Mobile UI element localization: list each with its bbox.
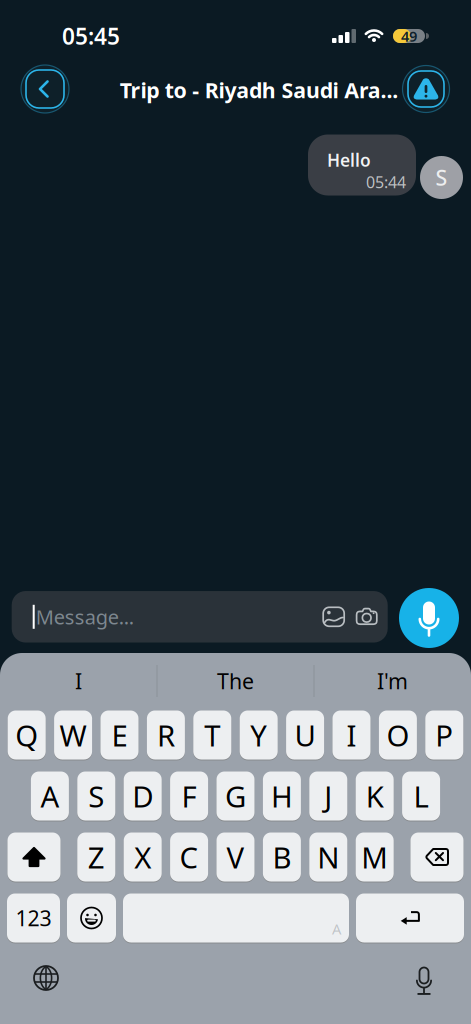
button[interactable]: H: [263, 771, 301, 821]
button[interactable]: O: [379, 710, 417, 760]
button[interactable]: C: [170, 832, 208, 882]
button[interactable]: X: [124, 832, 162, 882]
staticText: Y: [250, 715, 267, 754]
button[interactable]: S: [77, 771, 115, 821]
button[interactable]: Report: [401, 64, 450, 113]
staticText: D: [132, 776, 153, 815]
button[interactable]: Return: [356, 893, 464, 943]
button[interactable]: M: [356, 832, 394, 882]
button[interactable]: Next keyboard: [0, 965, 59, 991]
button[interactable]: Back: [20, 64, 70, 114]
staticText: The: [217, 667, 254, 695]
button[interactable]: Delete: [410, 832, 463, 882]
staticText: H: [271, 776, 293, 815]
staticText: M: [361, 837, 388, 876]
staticText: 49: [401, 26, 417, 46]
staticText: V: [226, 837, 244, 876]
staticText: Hello: [327, 148, 371, 171]
button[interactable]: B: [263, 832, 301, 882]
staticText: E: [111, 715, 127, 754]
staticText: Z: [88, 837, 105, 876]
button[interactable]: N: [309, 832, 347, 882]
staticText: I: [346, 715, 356, 754]
button[interactable]: Record voice message: [399, 588, 459, 648]
staticText: A: [40, 776, 59, 815]
button[interactable]: U: [286, 710, 324, 760]
staticText: T: [204, 715, 220, 754]
button[interactable]: Message: [12, 591, 388, 642]
button[interactable]: P: [425, 710, 463, 760]
button[interactable]: Q: [8, 710, 46, 760]
staticText: F: [182, 776, 197, 815]
staticText: 05:45: [62, 21, 120, 51]
button[interactable]: E: [100, 710, 138, 760]
button[interactable]: T: [193, 710, 231, 760]
staticText: S: [435, 163, 447, 192]
button[interactable]: space: [123, 893, 349, 943]
staticText: K: [366, 776, 384, 815]
button[interactable]: A: [31, 771, 69, 821]
staticText: R: [157, 715, 175, 754]
staticText: Q: [15, 715, 38, 754]
staticText: P: [435, 715, 453, 754]
staticText: A: [332, 919, 341, 938]
staticText: U: [295, 715, 316, 754]
staticText: G: [225, 776, 246, 815]
button[interactable]: I'm: [314, 661, 471, 701]
button[interactable]: W: [54, 710, 92, 760]
button[interactable]: R: [147, 710, 185, 760]
staticText: S: [88, 776, 104, 815]
staticText: I: [75, 667, 82, 695]
staticText: N: [317, 837, 339, 876]
staticText: L: [414, 776, 429, 815]
button[interactable]: I: [0, 661, 157, 701]
staticText: Message...: [36, 603, 134, 630]
button[interactable]: I: [332, 710, 370, 760]
staticText: O: [386, 715, 409, 754]
button[interactable]: G: [216, 771, 254, 821]
staticText: Trip to - Riyadh Saudi Ara...: [120, 76, 398, 104]
staticText: I'm: [377, 667, 408, 695]
staticText: 05:44: [366, 171, 406, 193]
button[interactable]: Y: [240, 710, 278, 760]
button[interactable]: V: [216, 832, 254, 882]
button[interactable]: Shift: [7, 832, 60, 882]
button[interactable]: K: [356, 771, 394, 821]
button[interactable]: Z: [77, 832, 115, 882]
staticText: C: [180, 837, 199, 876]
staticText: B: [272, 837, 291, 876]
staticText: 123: [15, 904, 51, 932]
button[interactable]: Emoji: [67, 893, 116, 943]
button[interactable]: F: [170, 771, 208, 821]
button[interactable]: The: [157, 661, 314, 701]
button[interactable]: Dictation: [415, 964, 471, 992]
button[interactable]: D: [124, 771, 162, 821]
staticText: W: [60, 715, 87, 754]
staticText: J: [324, 776, 332, 815]
button[interactable]: 123: [7, 893, 60, 943]
button[interactable]: J: [309, 771, 347, 821]
staticText: X: [134, 837, 151, 876]
button[interactable]: L: [402, 771, 440, 821]
